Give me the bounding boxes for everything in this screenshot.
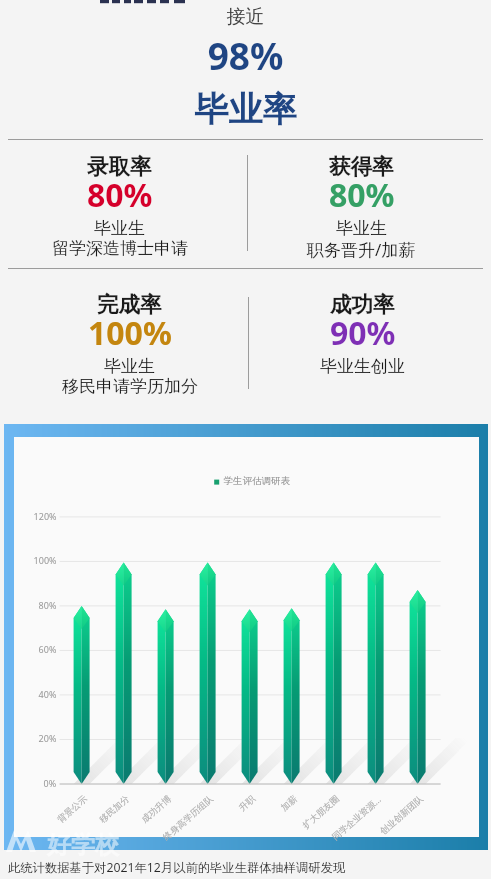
staticText: 毕业率: [0, 88, 491, 131]
staticText: 毕业生: [104, 356, 155, 377]
staticText: 留学深造博士申请: [52, 238, 188, 259]
staticText: 毕业生: [336, 218, 387, 239]
staticText: 此统计数据基于对2021年12月以前的毕业生群体抽样调研发现: [8, 859, 346, 876]
staticText: 90%: [330, 311, 396, 355]
staticText: 100%: [88, 311, 172, 355]
staticText: 好学校: [47, 830, 119, 860]
staticText: 录取率: [87, 153, 152, 180]
staticText: 毕业生创业: [320, 356, 405, 377]
staticText: 接近: [0, 5, 491, 29]
staticText: 移民申请学历加分: [62, 376, 198, 397]
staticText: 98%: [0, 30, 491, 80]
staticText: 成功率: [330, 291, 395, 318]
staticText: 获得率: [329, 153, 394, 180]
staticText: 职务晋升/加薪: [307, 238, 416, 261]
staticText: 完成率: [97, 291, 162, 318]
staticText: 毕业生: [94, 218, 145, 239]
staticText: 80%: [87, 173, 153, 217]
staticText: 80%: [329, 173, 395, 217]
